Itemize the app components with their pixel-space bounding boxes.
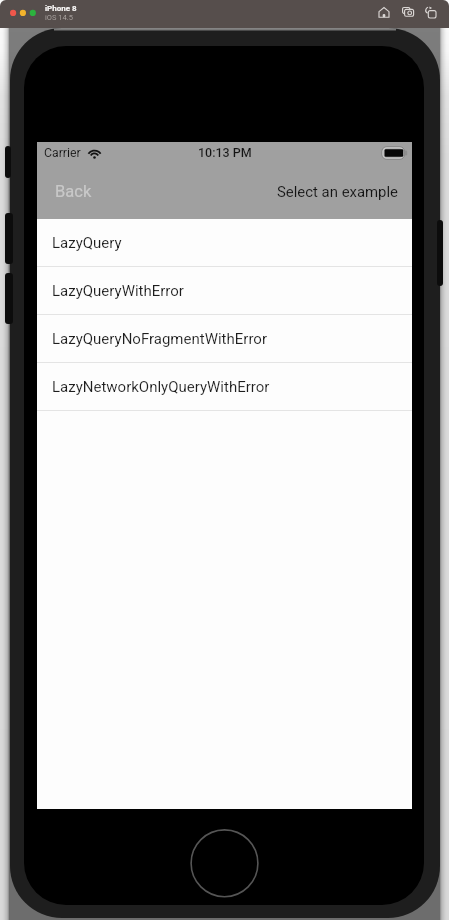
button[interactable]: Select an example bbox=[265, 173, 412, 210]
staticText: Back bbox=[55, 182, 92, 201]
button[interactable]: LazyNetworkOnlyQueryWithError bbox=[37, 363, 412, 410]
button[interactable]: Screenshot bbox=[400, 1, 418, 19]
button[interactable]: Back bbox=[37, 172, 106, 211]
staticText: LazyQueryNoFragmentWithError bbox=[52, 330, 267, 348]
staticText: iPhone 8 bbox=[45, 4, 77, 13]
staticText: 10:13 PM bbox=[198, 145, 252, 160]
staticText: iOS 14.5 bbox=[45, 13, 73, 22]
staticText: Select an example bbox=[277, 183, 398, 200]
button[interactable]: Home bbox=[375, 1, 393, 19]
button[interactable]: Rotate bbox=[422, 1, 440, 19]
staticText: LazyQuery bbox=[52, 234, 122, 252]
button[interactable]: LazyQueryWithError bbox=[37, 267, 412, 314]
staticText: Carrier bbox=[44, 146, 81, 160]
staticText: LazyQueryWithError bbox=[52, 282, 184, 300]
staticText: LazyNetworkOnlyQueryWithError bbox=[52, 378, 270, 396]
button[interactable]: LazyQueryNoFragmentWithError bbox=[37, 315, 412, 362]
button[interactable]: LazyQuery bbox=[37, 219, 412, 266]
